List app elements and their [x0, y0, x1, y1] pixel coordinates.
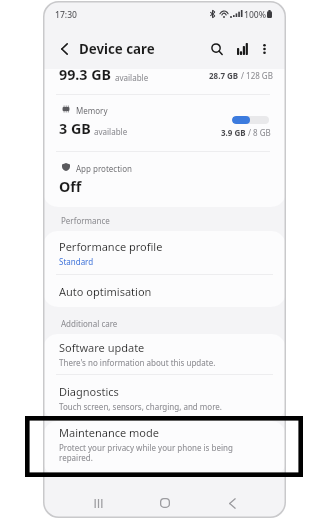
button[interactable]: Auto optimisation	[43, 275, 286, 307]
staticText: Touch screen, sensors, charging, and mor…	[59, 401, 222, 412]
staticText: 3.9 GB	[221, 127, 246, 138]
button[interactable]: Software update	[43, 334, 286, 374]
staticText: Additional care	[61, 318, 118, 329]
staticText: App protection	[76, 163, 132, 174]
button[interactable]: Recent apps	[87, 492, 109, 514]
button[interactable]: Usage statistics	[231, 38, 253, 60]
staticText: Standard	[59, 256, 94, 267]
button[interactable]: Navigate up	[53, 38, 75, 60]
staticText: Software update	[59, 340, 145, 355]
staticText: Protect your privacy while your phone is…	[59, 442, 237, 464]
staticText: Off	[59, 177, 82, 196]
staticText: available	[94, 126, 128, 137]
staticText: 3 GB	[59, 119, 91, 138]
staticText: Device care	[79, 40, 155, 58]
staticText: 28.7 GB	[209, 70, 239, 81]
staticText: 100%	[244, 9, 267, 21]
button[interactable]: Search	[206, 38, 228, 60]
staticText: Memory	[76, 105, 108, 116]
staticText: Performance profile	[59, 239, 163, 254]
staticText: 17:30	[55, 9, 78, 21]
staticText: / 8 GB	[248, 127, 271, 138]
button[interactable]: Performance profile	[43, 231, 286, 274]
staticText: Auto optimisation	[59, 284, 152, 299]
staticText: available	[115, 72, 149, 83]
staticText: Diagnostics	[59, 384, 119, 399]
button[interactable]: Diagnostics	[43, 375, 286, 420]
staticText: Performance	[61, 215, 110, 226]
button[interactable]: Home	[154, 492, 176, 514]
staticText: Maintenance mode	[59, 425, 159, 440]
staticText: / 128 GB	[241, 70, 273, 81]
staticText: There's no information about this update…	[59, 357, 216, 368]
staticText: 99.3 GB	[59, 65, 112, 84]
button[interactable]: More options	[253, 38, 275, 60]
button[interactable]: Back	[221, 492, 243, 514]
button[interactable]: Maintenance mode	[43, 421, 286, 476]
